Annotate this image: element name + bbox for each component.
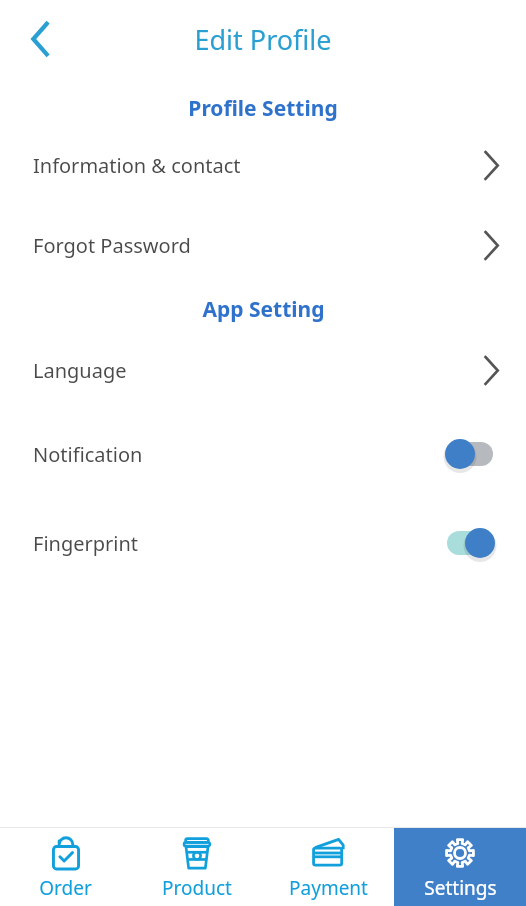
button[interactable]: Back [12,11,68,67]
staticText: Profile Setting [188,94,338,123]
button[interactable]: Fingerprint [0,523,526,563]
staticText: Notification [33,441,143,468]
staticText: Language [33,357,127,384]
button[interactable]: Order [0,828,131,906]
button[interactable]: Information & contact [0,145,526,185]
staticText: Information & contact [33,152,241,179]
staticText: Settings [424,875,497,901]
staticText: Order [39,875,92,901]
button[interactable]: Forgot Password [0,225,526,265]
button[interactable]: Product [131,828,262,906]
button[interactable]: Notification [0,434,526,474]
button[interactable]: Language [0,350,526,390]
button[interactable]: Settings [394,828,526,906]
staticText: Payment [289,875,368,901]
staticText: App Setting [202,295,325,324]
staticText: Forgot Password [33,232,191,259]
staticText: Edit Profile [194,21,332,58]
button[interactable]: Payment [262,828,394,906]
staticText: Fingerprint [33,530,139,557]
staticText: Product [162,875,232,901]
